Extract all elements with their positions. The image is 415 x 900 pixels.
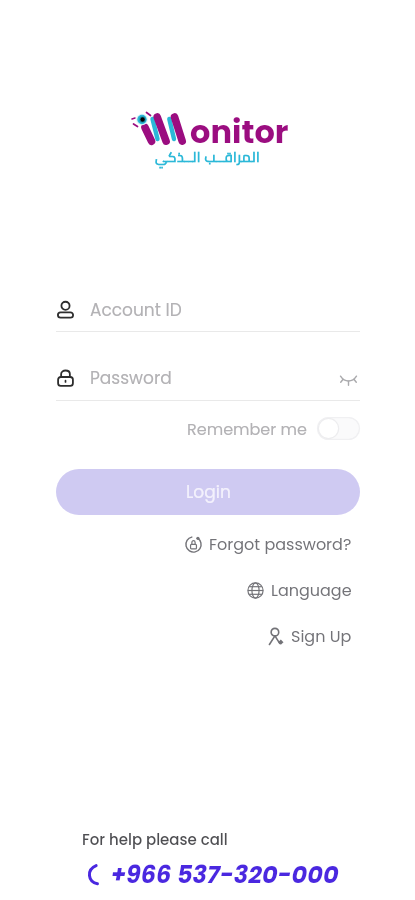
staticText: For help please call (82, 829, 228, 850)
staticText: Sign Up (291, 625, 352, 647)
staticText: Forgot password? (209, 533, 352, 555)
button[interactable]: Remember me (187, 414, 360, 443)
staticText: Password (90, 366, 172, 390)
button[interactable]: Login (56, 469, 360, 515)
staticText: Login (186, 480, 231, 504)
button[interactable]: Language (246, 576, 352, 604)
staticText: Remember me (187, 418, 307, 440)
staticText: Language (271, 579, 352, 601)
button[interactable]: Forgot password? (184, 530, 352, 558)
button[interactable]: Sign Up (266, 622, 352, 650)
button[interactable]: Show password (336, 366, 360, 390)
staticText: +966 537-320-000 (111, 858, 339, 892)
staticText: المراقــب الــذكي (155, 144, 261, 170)
staticText: Account ID (90, 298, 182, 322)
staticText: onitor (190, 109, 289, 152)
